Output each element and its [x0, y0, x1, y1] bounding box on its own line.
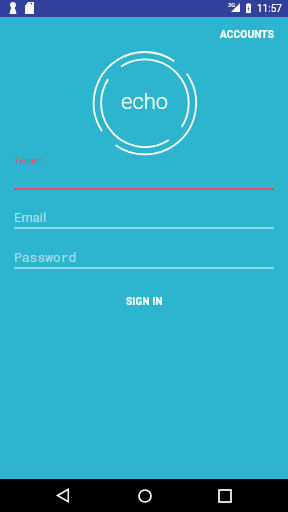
- staticText: 3G: [228, 1, 236, 8]
- staticText: 11:57: [257, 3, 282, 15]
- button[interactable]: ACCOUNTS: [206, 17, 288, 51]
- button[interactable]: Back: [40, 479, 85, 512]
- button[interactable]: SIGN IN: [100, 290, 189, 314]
- staticText: ACCOUNTS: [220, 29, 274, 41]
- staticText: Email: [14, 210, 47, 225]
- staticText: Password: [14, 248, 77, 265]
- staticText: Tenant: [14, 156, 42, 167]
- button[interactable]: Home: [122, 479, 167, 512]
- staticText: echo: [121, 89, 169, 115]
- button[interactable]: Recent apps: [202, 479, 247, 512]
- staticText: SIGN IN: [126, 296, 163, 308]
